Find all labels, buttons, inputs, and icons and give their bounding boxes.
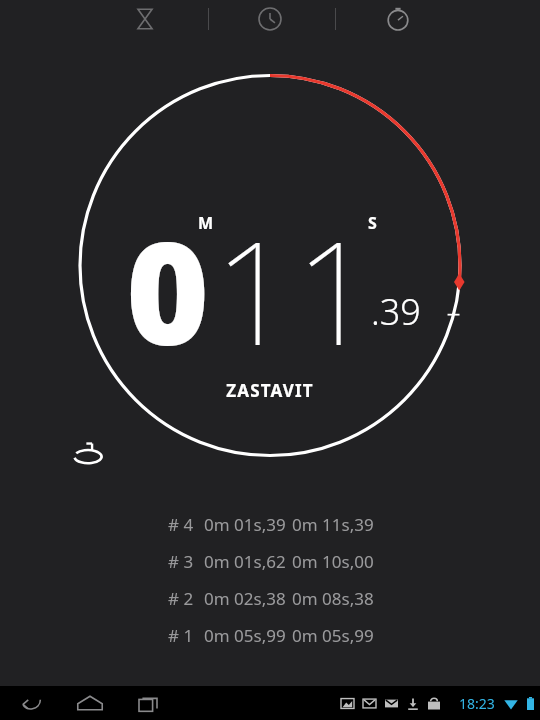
- staticText: S: [368, 212, 377, 234]
- button[interactable]: Timer: [120, 0, 170, 38]
- staticText: 0: [126, 193, 210, 386]
- staticText: # 4: [168, 513, 204, 536]
- staticText: 0m 08s,38: [292, 587, 374, 610]
- staticText: # 2: [168, 587, 204, 610]
- button[interactable]: # 3: [168, 543, 408, 580]
- staticText: 0m 02s,38: [204, 587, 292, 610]
- button[interactable]: Lap: [60, 430, 116, 478]
- staticText: 11: [214, 193, 376, 386]
- staticText: # 1: [168, 624, 204, 647]
- button[interactable]: Stopwatch: [373, 0, 423, 38]
- button[interactable]: # 4: [168, 506, 408, 543]
- staticText: 18:23: [459, 694, 495, 713]
- button[interactable]: Clock: [245, 0, 295, 38]
- staticText: # 3: [168, 550, 204, 573]
- staticText: 0m 11s,39: [292, 513, 374, 536]
- staticText: 0m 05s,99: [292, 624, 374, 647]
- staticText: 0m 05s,99: [204, 624, 292, 647]
- staticText: M: [198, 212, 214, 234]
- button[interactable]: # 1: [168, 617, 408, 654]
- button[interactable]: Back: [8, 686, 52, 720]
- button[interactable]: Recent apps: [126, 686, 170, 720]
- staticText: .39: [371, 287, 421, 336]
- button[interactable]: ZASTAVIT: [180, 368, 360, 412]
- button[interactable]: Home: [68, 686, 112, 720]
- staticText: 0m 01s,62: [204, 550, 292, 573]
- staticText: 0m 10s,00: [292, 550, 374, 573]
- staticText: ZASTAVIT: [226, 379, 314, 402]
- staticText: 0m 01s,39: [204, 513, 292, 536]
- button[interactable]: # 2: [168, 580, 408, 617]
